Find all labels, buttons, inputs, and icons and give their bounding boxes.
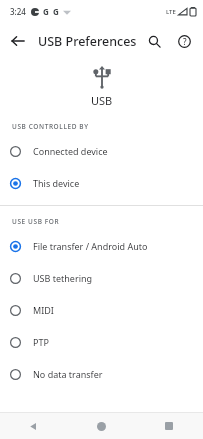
button[interactable]: PTP xyxy=(0,326,203,358)
staticText: PTP xyxy=(33,336,49,348)
button[interactable]: This device xyxy=(0,167,203,199)
staticText: USB tethering xyxy=(33,272,93,284)
staticText: G xyxy=(43,6,49,17)
button[interactable]: Recent apps xyxy=(135,413,203,439)
staticText: MIDI xyxy=(33,304,54,316)
staticText: Connected device xyxy=(33,145,108,157)
staticText: USB xyxy=(91,93,113,108)
button[interactable]: Home xyxy=(67,413,135,439)
button[interactable]: USB tethering xyxy=(0,262,203,294)
staticText: LTE xyxy=(166,8,176,16)
staticText: ? xyxy=(183,36,187,47)
staticText: No data transfer xyxy=(33,368,103,380)
staticText: File transfer / Android Auto xyxy=(33,240,148,252)
button[interactable]: Connected device xyxy=(0,135,203,167)
button[interactable]: File transfer / Android Auto xyxy=(0,230,203,262)
staticText: USB CONTROLLED BY xyxy=(12,122,89,131)
button[interactable]: No data transfer xyxy=(0,358,203,390)
button[interactable]: Search xyxy=(140,27,168,55)
button[interactable]: Help xyxy=(170,27,198,55)
staticText: G xyxy=(53,6,59,17)
button[interactable]: Back xyxy=(4,27,32,55)
button[interactable]: MIDI xyxy=(0,294,203,326)
staticText: USB Preferences xyxy=(38,33,137,50)
staticText: USE USB FOR xyxy=(12,217,60,226)
staticText: 3:24 xyxy=(10,6,26,17)
button[interactable]: Back xyxy=(0,413,67,439)
staticText: This device xyxy=(33,177,80,189)
